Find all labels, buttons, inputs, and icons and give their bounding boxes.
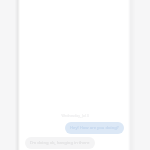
button[interactable]: Hey! How are you doing? <box>65 122 124 134</box>
staticText: Hey! How are you doing? <box>70 125 119 131</box>
staticText: Wednesday, Jul 3 <box>61 113 89 118</box>
staticText: I'm doing ok, hanging in there <box>30 140 90 146</box>
button[interactable]: I'm doing ok, hanging in there <box>25 137 95 149</box>
